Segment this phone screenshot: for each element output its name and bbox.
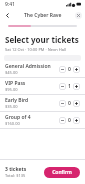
staticText: Early Bird [5, 97, 29, 104]
staticText: Confirm [52, 169, 72, 176]
button[interactable]: Increase [73, 117, 80, 124]
button[interactable]: Decrease [59, 100, 66, 107]
staticText: Select your tickets [5, 34, 79, 45]
staticText: 1 [68, 83, 71, 90]
button[interactable]: Decrease [59, 83, 66, 90]
button[interactable]: Increase [73, 100, 80, 107]
staticText: General Admission [5, 63, 51, 70]
staticText: $160.00 [5, 121, 20, 126]
button[interactable]: Increase [73, 66, 80, 73]
staticText: VIP Pass [5, 80, 26, 87]
button[interactable]: Confirm [44, 167, 80, 178]
button[interactable]: Decrease [59, 117, 66, 124]
staticText: Sat 12 Oct · 10:00 PM · Neon Hall [5, 47, 67, 52]
staticText: 0 [68, 100, 71, 107]
staticText: 0 [68, 66, 71, 73]
staticText: 3 tickets [5, 166, 27, 173]
staticText: The Cyber Rave [24, 12, 62, 19]
button[interactable]: Decrease [59, 66, 66, 73]
staticText: $35.00 [5, 104, 18, 109]
staticText: 9:41 [5, 1, 15, 8]
staticText: $95.00 [5, 87, 18, 92]
staticText: Group of 4 [5, 114, 31, 121]
button[interactable]: Close [75, 12, 82, 19]
button[interactable]: Back [3, 11, 12, 20]
staticText: 0 [68, 117, 71, 124]
button[interactable]: Increase [73, 83, 80, 90]
staticText: Total: $135 [5, 173, 26, 178]
staticText: $45.00 [5, 70, 18, 75]
